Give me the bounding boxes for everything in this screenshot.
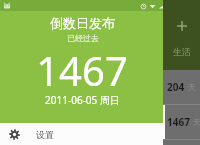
- staticText: 天: [188, 82, 196, 92]
- staticText: 1467: [36, 43, 128, 91]
- staticText: 设置: [36, 129, 54, 140]
- button[interactable]: Settings: [0, 123, 163, 145]
- other: Add: [176, 20, 188, 32]
- button[interactable]: 1467: [163, 105, 200, 139]
- other: Settings: [9, 129, 20, 140]
- button[interactable]: Add: [163, 0, 200, 70]
- staticText: 生活: [173, 46, 191, 57]
- staticText: 倒数日发布: [50, 15, 115, 31]
- staticText: 已经过去: [67, 33, 99, 43]
- staticText: 1467: [167, 115, 190, 129]
- staticText: 204: [167, 80, 185, 94]
- staticText: 2011-06-05 周日: [45, 93, 120, 107]
- button[interactable]: 204: [163, 70, 200, 104]
- staticText: 天: [193, 117, 200, 127]
